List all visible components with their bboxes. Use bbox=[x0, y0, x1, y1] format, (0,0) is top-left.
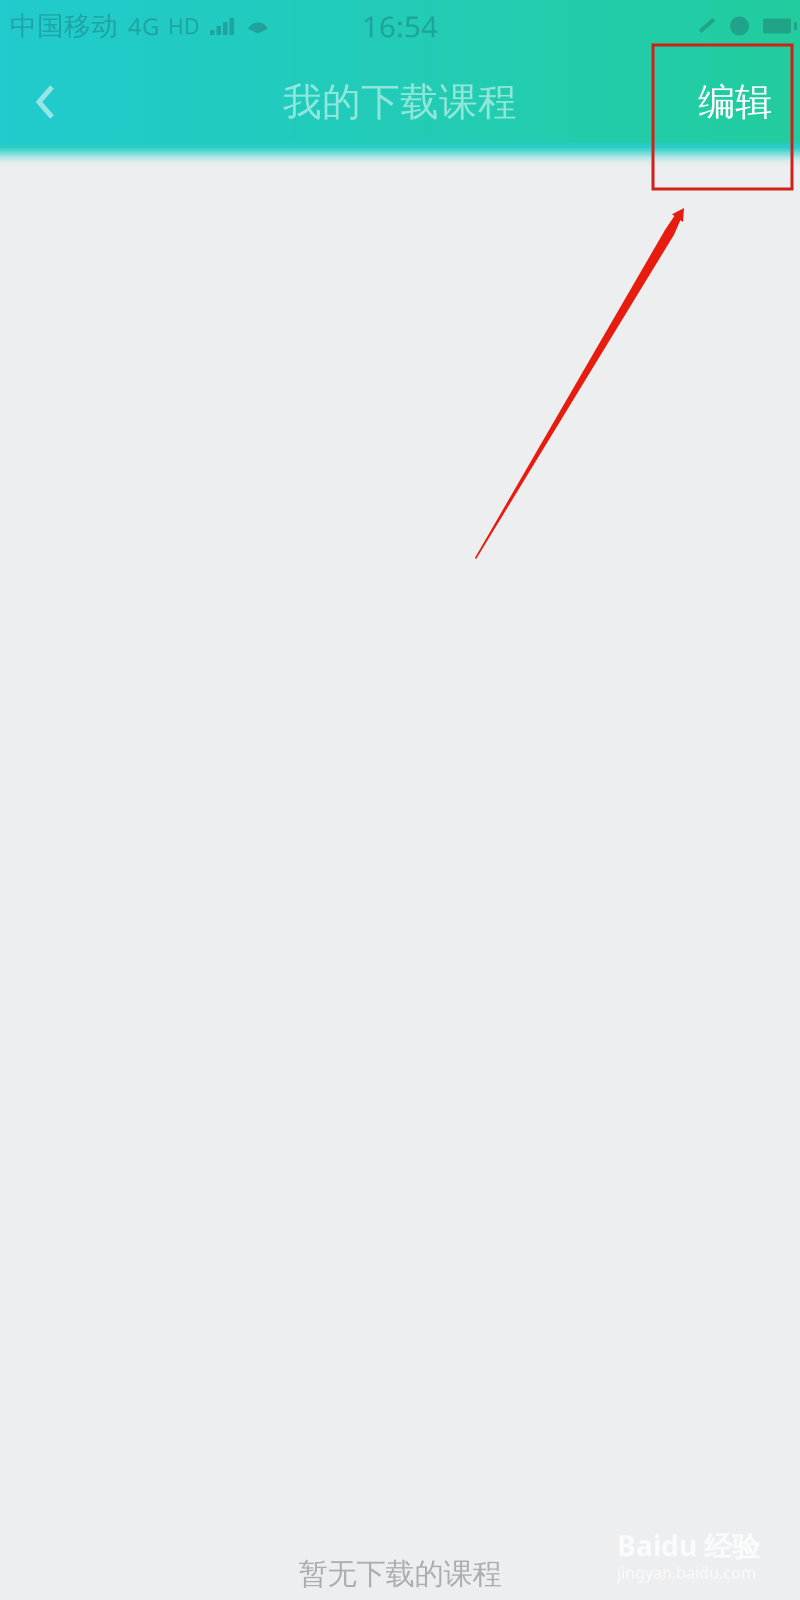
button[interactable]: 编辑 bbox=[666, 52, 800, 152]
staticText: 我的下载课程 bbox=[283, 78, 517, 126]
staticText: 4G bbox=[128, 10, 159, 42]
button[interactable]: Back bbox=[0, 52, 84, 152]
staticText: 暂无下载的课程 bbox=[298, 1556, 501, 1592]
staticText: jingyan.baidu.com bbox=[617, 1562, 756, 1583]
staticText: 编辑 bbox=[698, 79, 772, 125]
staticText: Baidu 经验 bbox=[617, 1527, 760, 1564]
staticText: HD bbox=[168, 12, 200, 40]
staticText: 16:54 bbox=[362, 6, 438, 45]
staticText: 中国移动 bbox=[10, 10, 118, 42]
